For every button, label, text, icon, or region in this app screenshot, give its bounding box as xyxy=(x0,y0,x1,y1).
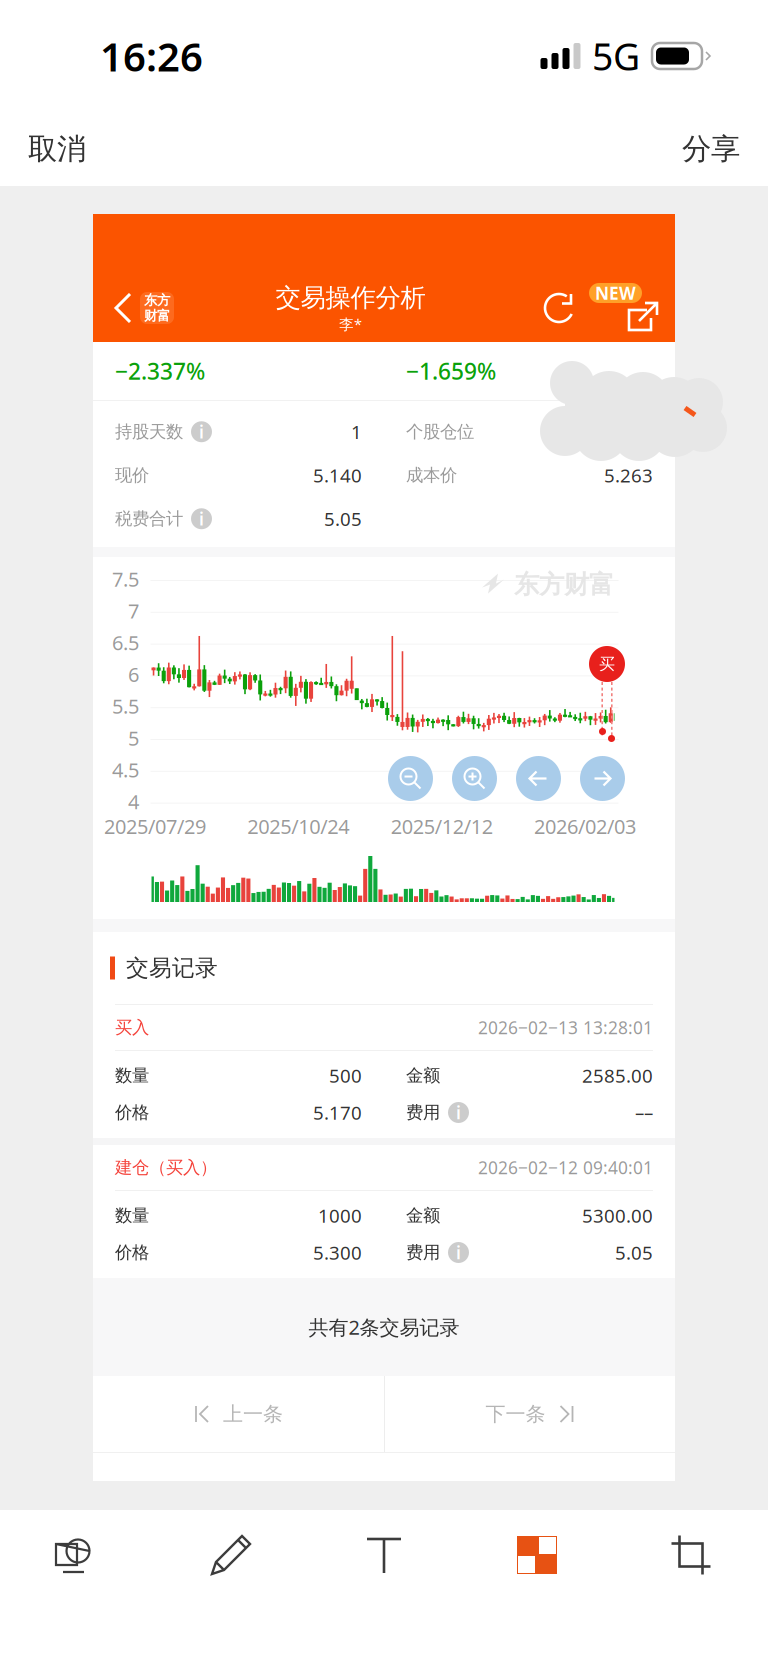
staticText: −1.659% xyxy=(406,356,496,386)
staticText: 7 xyxy=(128,597,139,624)
staticText: 2025/12/12 xyxy=(391,813,493,840)
staticText: 5G xyxy=(592,31,640,81)
staticText: 取消 xyxy=(28,131,86,167)
button[interactable]: 放大 xyxy=(452,756,497,801)
staticText: 2026−02−12 09:40:01 xyxy=(478,1156,653,1179)
staticText: 2025/10/24 xyxy=(247,813,349,840)
staticText: −0.102% xyxy=(406,338,496,368)
button[interactable]: 上一条 xyxy=(93,1376,384,1452)
staticText: 2026−02−13 13:28:01 xyxy=(478,1016,653,1039)
staticText: −0.227% xyxy=(115,338,205,368)
staticText: 交易操作分析 xyxy=(275,282,425,313)
staticText: 买入 xyxy=(115,1017,149,1038)
staticText: −2.337% xyxy=(115,356,205,386)
staticText: 4 xyxy=(128,788,139,815)
staticText: 金额 xyxy=(406,1065,440,1086)
staticText: 个股仓位 xyxy=(406,421,474,442)
staticText: 财富 xyxy=(144,307,170,324)
staticText: i xyxy=(456,1101,461,1124)
staticText: 2585.00 xyxy=(582,1063,653,1088)
button[interactable]: 左移 xyxy=(516,756,561,801)
staticText: 东方财富 xyxy=(514,569,614,600)
button[interactable]: 裁剪 xyxy=(614,1510,768,1600)
staticText: 李* xyxy=(339,314,362,334)
staticText: –– xyxy=(635,1100,653,1125)
staticText: 5.140 xyxy=(313,463,362,488)
staticText: 5.5 xyxy=(112,693,139,719)
button[interactable]: 画笔 xyxy=(154,1510,308,1600)
staticText: 交易记录 xyxy=(126,954,218,982)
staticText: 5.05 xyxy=(324,506,362,531)
staticText: 5300.00 xyxy=(582,1203,653,1228)
staticText: 持股天数 xyxy=(115,421,183,442)
staticText: 金额 xyxy=(406,1205,440,1226)
staticText: 6 xyxy=(128,661,139,688)
staticText: 费用 xyxy=(406,1102,440,1123)
button[interactable]: 取消 xyxy=(0,112,106,186)
staticText: 1000 xyxy=(318,1203,362,1228)
staticText: 2026/02/03 xyxy=(534,813,636,840)
staticText: 分享 xyxy=(682,131,740,167)
staticText: i xyxy=(199,507,204,530)
staticText: 1 xyxy=(351,419,362,444)
staticText: 现价 xyxy=(115,465,149,486)
staticText: 5.263 xyxy=(604,463,653,488)
button[interactable]: 刷新 xyxy=(543,292,575,324)
staticText: 7.5 xyxy=(112,566,139,592)
staticText: 4.5 xyxy=(112,756,139,783)
staticText: 价格 xyxy=(115,1242,149,1263)
button[interactable]: 下一条 xyxy=(385,1376,675,1452)
button[interactable]: 分享 xyxy=(662,112,768,186)
staticText: 成本价 xyxy=(406,465,457,486)
button[interactable]: 文字 xyxy=(308,1510,460,1600)
staticText: 500 xyxy=(329,1063,362,1088)
button[interactable]: 形状 xyxy=(0,1510,154,1600)
staticText: 买 xyxy=(599,654,615,674)
staticText: 税费合计 xyxy=(115,508,183,529)
button[interactable]: 分享 xyxy=(627,301,659,333)
staticText: 2025/07/29 xyxy=(104,813,206,840)
staticText: 下一条 xyxy=(485,1402,545,1426)
staticText: 6.5 xyxy=(112,629,139,656)
staticText: 5.05 xyxy=(615,1240,653,1265)
staticText: 5 xyxy=(128,725,139,751)
staticText: 上一条 xyxy=(223,1402,283,1426)
staticText: 5.300 xyxy=(313,1240,362,1265)
staticText: 数量 xyxy=(115,1205,149,1226)
staticText: 建仓（买入） xyxy=(115,1157,217,1178)
staticText: 5.170 xyxy=(313,1100,362,1125)
staticText: NEW xyxy=(595,281,636,304)
button[interactable]: 返回 xyxy=(93,285,174,331)
staticText: 16:26 xyxy=(100,29,203,82)
staticText: 价格 xyxy=(115,1102,149,1123)
staticText: 东方 xyxy=(144,292,170,308)
button[interactable]: 右移 xyxy=(580,756,625,801)
staticText: i xyxy=(456,1241,461,1264)
staticText: 数量 xyxy=(115,1065,149,1086)
staticText: 费用 xyxy=(406,1242,440,1263)
button[interactable]: 缩小 xyxy=(388,756,433,801)
staticText: i xyxy=(199,420,204,443)
button[interactable]: 马赛克 xyxy=(460,1510,614,1600)
staticText: 共有2条交易记录 xyxy=(308,1314,459,1340)
